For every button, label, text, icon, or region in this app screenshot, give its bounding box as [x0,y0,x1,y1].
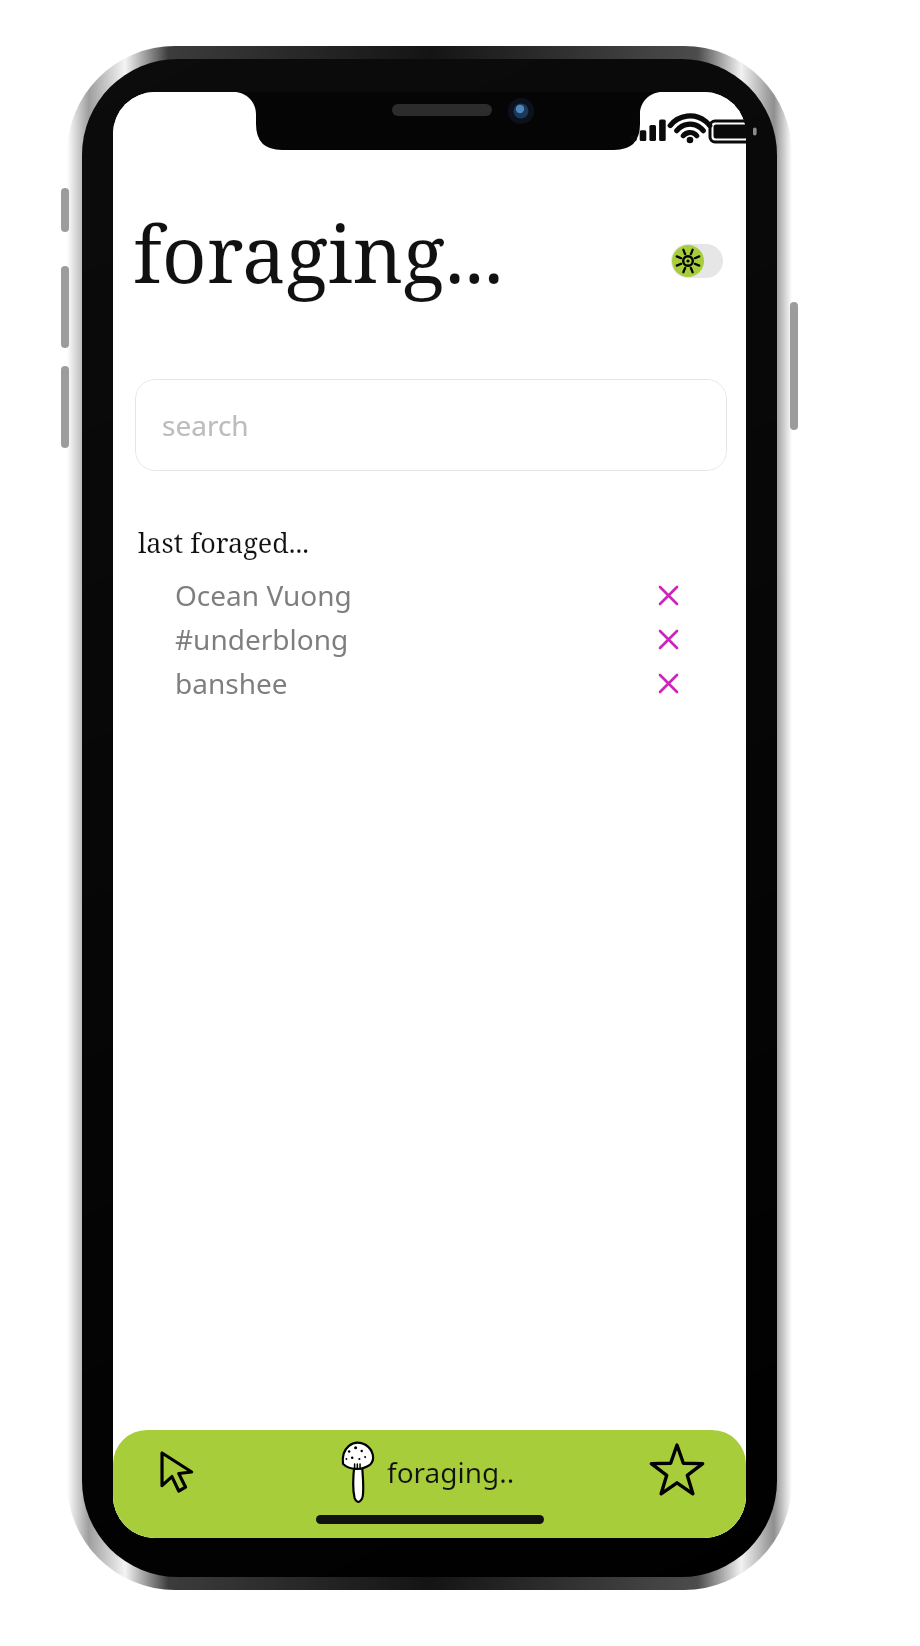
staticText: banshee [175,664,288,702]
button[interactable]: Ocean Vuong [138,573,746,617]
button[interactable]: Remove banshee [653,668,683,698]
button[interactable]: Remove Ocean Vuong [653,580,683,610]
button[interactable]: banshee [138,661,746,705]
button[interactable]: Browse [147,1441,209,1503]
staticText: last foraged... [138,524,309,561]
button[interactable]: #underblong [138,617,746,661]
button[interactable]: search [135,379,727,471]
staticText: foraging.. [387,1453,515,1491]
staticText: Ocean Vuong [175,576,352,614]
button[interactable]: Favourites [646,1441,708,1503]
staticText: foraging... [133,200,504,306]
button[interactable]: Remove #underblong [653,624,683,654]
staticText: #underblong [175,620,349,658]
button[interactable]: foraging.. [341,1432,515,1512]
button[interactable]: Toggle theme [671,244,723,278]
staticText: search [162,406,249,444]
